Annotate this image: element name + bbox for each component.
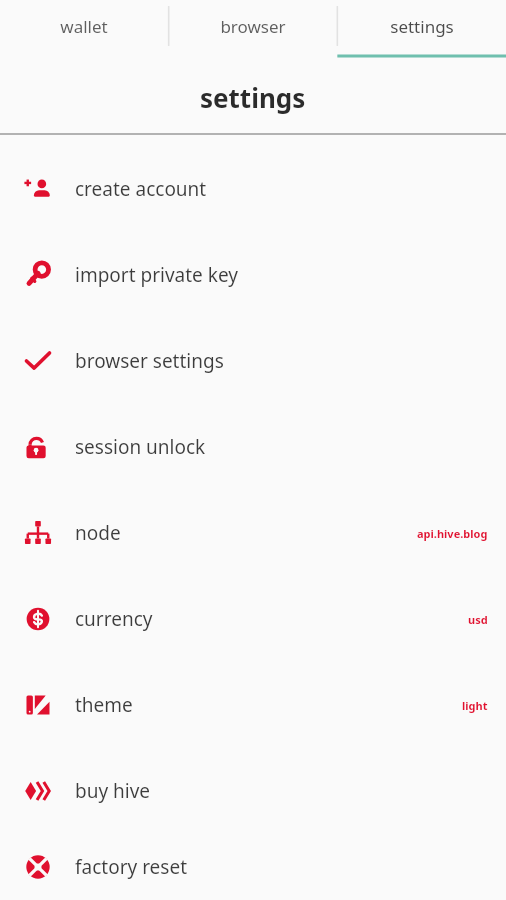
button[interactable]: theme (0, 662, 506, 748)
staticText: node (75, 520, 121, 546)
staticText: buy hive (75, 778, 151, 804)
button[interactable]: browser settings (0, 318, 506, 404)
button[interactable]: session unlock (0, 404, 506, 490)
staticText: theme (75, 692, 133, 718)
staticText: browser settings (75, 348, 224, 374)
staticText: browser (220, 15, 286, 38)
button[interactable]: browser (168, 0, 337, 60)
button[interactable]: currency (0, 576, 506, 662)
button[interactable]: buy hive (0, 748, 506, 834)
staticText: currency (75, 606, 153, 632)
staticText: api.hive.blog (417, 526, 488, 541)
staticText: settings (200, 80, 306, 115)
button[interactable]: node (0, 490, 506, 576)
button[interactable]: settings (337, 0, 506, 60)
staticText: usd (468, 612, 488, 627)
staticText: light (462, 698, 488, 713)
staticText: import private key (75, 262, 238, 288)
staticText: create account (75, 176, 207, 202)
button[interactable]: import private key (0, 232, 506, 318)
staticText: settings (390, 15, 454, 38)
staticText: factory reset (75, 854, 188, 880)
button[interactable]: create account (0, 146, 506, 232)
button[interactable]: wallet (0, 0, 168, 60)
staticText: session unlock (75, 434, 206, 460)
staticText: wallet (60, 15, 108, 38)
button[interactable]: factory reset (0, 834, 506, 900)
